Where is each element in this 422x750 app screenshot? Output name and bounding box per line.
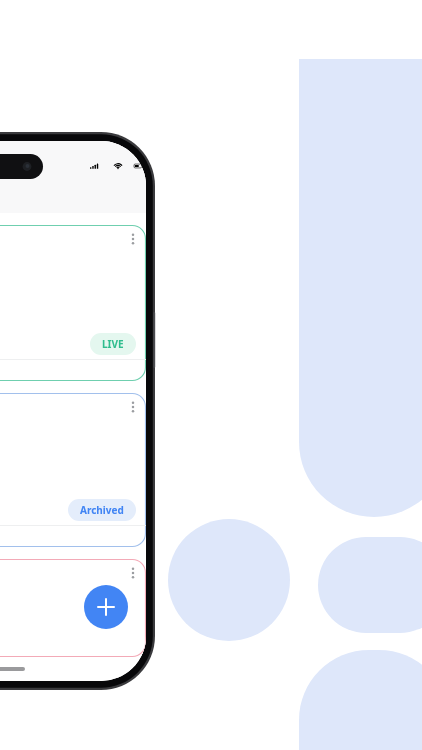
staticText: Archived xyxy=(80,503,124,517)
button[interactable]: More options xyxy=(0,559,146,657)
button[interactable]: More options xyxy=(126,230,140,248)
button[interactable]: More options xyxy=(0,393,146,547)
button[interactable]: LIVE xyxy=(90,333,136,355)
button[interactable]: More options xyxy=(126,398,140,416)
button[interactable]: Archived xyxy=(68,499,136,521)
button[interactable]: Add xyxy=(84,585,128,629)
button[interactable]: More options xyxy=(126,564,140,582)
button[interactable]: More options xyxy=(0,225,146,381)
staticText: LIVE xyxy=(102,337,124,351)
